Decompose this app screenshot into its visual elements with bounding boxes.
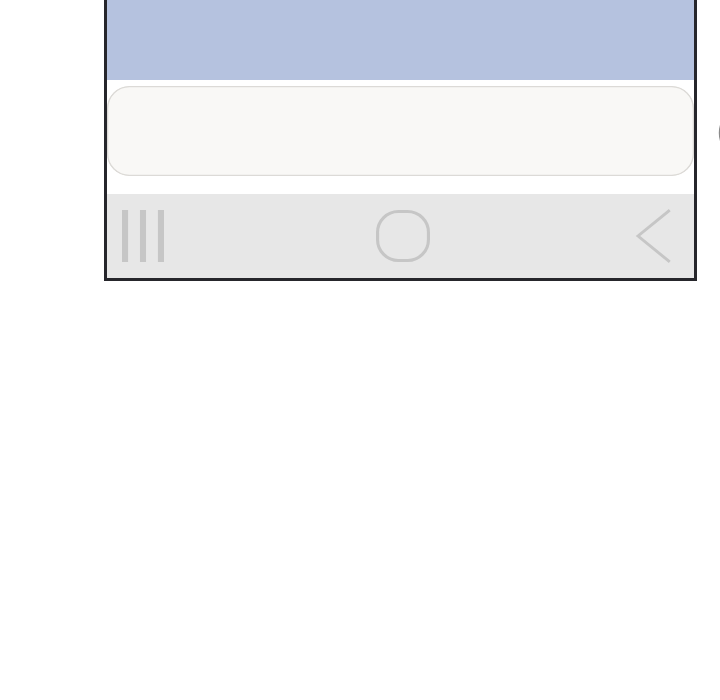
button[interactable]: Home — [361, 194, 445, 278]
button[interactable]: Recent apps — [103, 194, 183, 278]
button[interactable]: Insert emoji — [711, 102, 720, 164]
button[interactable] — [107, 86, 694, 176]
button[interactable]: Back — [612, 194, 694, 278]
